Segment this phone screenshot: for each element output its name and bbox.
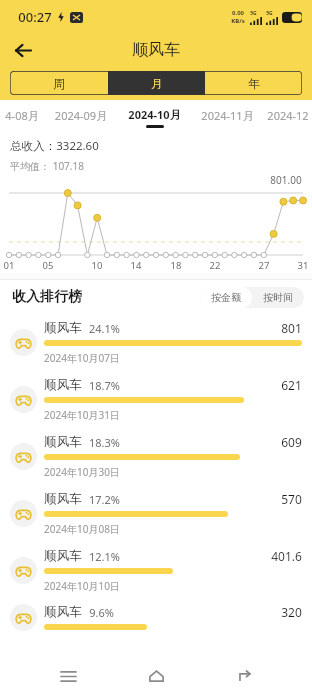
staticText: 2024年10月10日 bbox=[44, 579, 120, 593]
staticText: 14 bbox=[128, 259, 144, 272]
staticText: 2024年10月30日 bbox=[44, 465, 120, 479]
staticText: 总收入：3322.60 bbox=[10, 138, 99, 154]
button[interactable]: 顺风车 bbox=[0, 599, 312, 635]
staticText: 570 bbox=[281, 491, 302, 507]
staticText: 顺风车 bbox=[44, 604, 82, 620]
staticText: 平均值： 107.18 bbox=[10, 159, 84, 173]
staticText: 27 bbox=[256, 259, 272, 272]
staticText: 年 bbox=[248, 76, 260, 91]
button[interactable]: Recents bbox=[47, 659, 89, 693]
staticText: 05 bbox=[40, 259, 56, 272]
staticText: 801.00 bbox=[270, 173, 302, 187]
staticText: 18.7% bbox=[89, 378, 120, 393]
staticText: 2024-09月 bbox=[44, 108, 118, 123]
button[interactable]: Back bbox=[8, 35, 38, 65]
staticText: 00:27 bbox=[18, 8, 52, 26]
staticText: 5G bbox=[266, 10, 273, 17]
button[interactable]: 顺风车 bbox=[0, 485, 312, 542]
staticText: 按金额 bbox=[211, 291, 241, 304]
staticText: 22 bbox=[207, 259, 223, 272]
staticText: 顺风车 bbox=[44, 377, 82, 393]
button[interactable]: 按时间 bbox=[263, 291, 293, 304]
staticText: 5G bbox=[250, 10, 257, 17]
staticText: 2024年10月31日 bbox=[44, 408, 120, 422]
staticText: 周 bbox=[53, 76, 65, 91]
staticText: 2024-11月 bbox=[191, 108, 264, 123]
staticText: 2024-12 bbox=[264, 108, 312, 123]
button[interactable]: 年 bbox=[205, 71, 302, 95]
staticText: 顺风车 bbox=[44, 491, 82, 507]
staticText: 收入排行榜 bbox=[12, 288, 82, 306]
staticText: 顺风车 bbox=[44, 434, 82, 450]
button[interactable]: 顺风车 bbox=[0, 314, 312, 371]
staticText: 顺风车 bbox=[44, 548, 82, 564]
staticText: 顺风车 bbox=[44, 320, 82, 336]
staticText: 24.1% bbox=[89, 321, 120, 336]
staticText: 10 bbox=[89, 259, 105, 272]
button[interactable]: Back bbox=[224, 659, 266, 693]
staticText: 按时间 bbox=[263, 291, 293, 304]
staticText: 2024年10月08日 bbox=[44, 522, 120, 536]
button[interactable]: 顺风车 bbox=[0, 371, 312, 428]
button[interactable]: 按金额 bbox=[211, 291, 241, 304]
staticText: 18 bbox=[168, 259, 184, 272]
staticText: 621 bbox=[281, 377, 302, 393]
staticText: 4-08月 bbox=[0, 108, 44, 123]
staticText: 609 bbox=[281, 434, 302, 450]
button[interactable]: 2024-12 bbox=[264, 108, 312, 126]
button[interactable]: 月 bbox=[108, 71, 205, 95]
staticText: 01 bbox=[1, 259, 17, 272]
staticText: 18.3% bbox=[89, 435, 120, 450]
staticText: 17.2% bbox=[89, 492, 120, 507]
button[interactable]: 4-08月 bbox=[0, 108, 44, 126]
button[interactable]: 周 bbox=[10, 71, 108, 95]
staticText: 9.6% bbox=[89, 605, 114, 620]
staticText: 0.00 bbox=[232, 9, 244, 17]
staticText: 401.6 bbox=[271, 548, 302, 564]
button[interactable]: 2024-11月 bbox=[191, 108, 264, 126]
staticText: KB/s bbox=[231, 17, 245, 25]
staticText: 12.1% bbox=[89, 549, 120, 564]
button[interactable]: Home bbox=[135, 659, 177, 693]
staticText: 2024年10月07日 bbox=[44, 351, 120, 365]
staticText: 2024-10月 bbox=[118, 107, 191, 122]
button[interactable]: 顺风车 bbox=[0, 428, 312, 485]
button[interactable]: 2024-09月 bbox=[44, 108, 118, 126]
staticText: 320 bbox=[281, 604, 302, 620]
staticText: 月 bbox=[151, 76, 163, 91]
staticText: 801 bbox=[281, 320, 302, 336]
staticText: 31 bbox=[295, 259, 311, 272]
button[interactable]: 2024-10月 bbox=[118, 107, 191, 128]
staticText: 顺风车 bbox=[132, 40, 180, 60]
button[interactable]: 顺风车 bbox=[0, 542, 312, 599]
